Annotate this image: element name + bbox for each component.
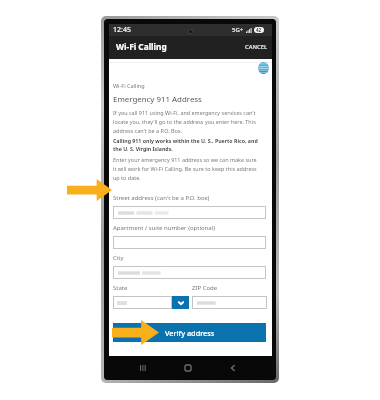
button[interactable]: Select state xyxy=(172,296,189,309)
button[interactable] xyxy=(113,206,266,219)
button[interactable] xyxy=(113,296,172,309)
staticText: CANCEL xyxy=(245,43,267,51)
staticText: 5G+ xyxy=(232,26,244,34)
staticText: If you call 911 using Wi-Fi, and emergen… xyxy=(113,109,262,134)
button[interactable]: Verify address xyxy=(113,323,266,342)
button[interactable]: Back xyxy=(222,357,244,379)
staticText: Wi-Fi Calling xyxy=(116,41,167,52)
staticText: Calling 911 only works within the U. S.,… xyxy=(113,137,268,152)
staticText: Verify address xyxy=(165,328,215,338)
button[interactable]: Home xyxy=(177,357,199,379)
staticText: 42 xyxy=(256,27,262,33)
button[interactable] xyxy=(113,236,266,249)
button[interactable] xyxy=(113,266,266,279)
button[interactable] xyxy=(192,296,267,309)
staticText: Enter your emergency 911 address so we c… xyxy=(113,156,262,181)
staticText: City xyxy=(113,254,124,262)
staticText: Street address (can't be a P.O. box) xyxy=(113,194,210,202)
staticText: Emergency 911 Address xyxy=(113,94,202,105)
button[interactable]: Recents xyxy=(132,357,154,379)
staticText: Wi-Fi Calling xyxy=(113,82,145,89)
staticText: State xyxy=(113,284,128,292)
button[interactable]: CANCEL xyxy=(245,43,267,51)
staticText: Apartment / suite number (optional) xyxy=(113,224,216,232)
staticText: ZIP Code xyxy=(192,284,218,292)
staticText: 12:45 xyxy=(113,25,131,35)
